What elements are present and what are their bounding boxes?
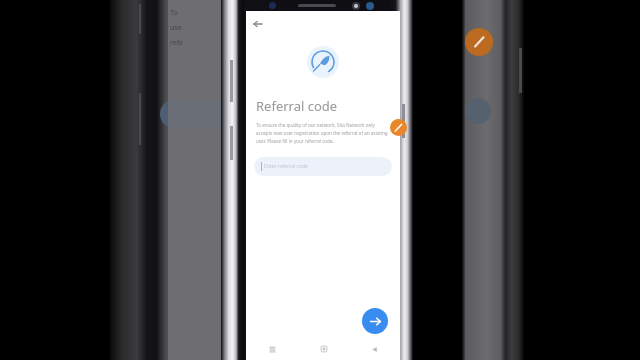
staticText: refe <box>170 38 184 48</box>
button[interactable]: Next <box>362 308 388 334</box>
button[interactable]: Back <box>249 15 267 33</box>
button[interactable]: Back <box>349 340 400 358</box>
staticText: Enter referral code <box>264 163 308 170</box>
button[interactable]: Enter referral code <box>254 157 392 176</box>
button[interactable]: Home <box>298 340 349 358</box>
staticText: use <box>170 23 182 33</box>
staticText: Referral code <box>256 97 338 115</box>
staticText: To <box>170 8 180 18</box>
button[interactable]: Recents <box>246 340 298 358</box>
staticText: To ensure the quality of our network, Si… <box>256 122 390 144</box>
